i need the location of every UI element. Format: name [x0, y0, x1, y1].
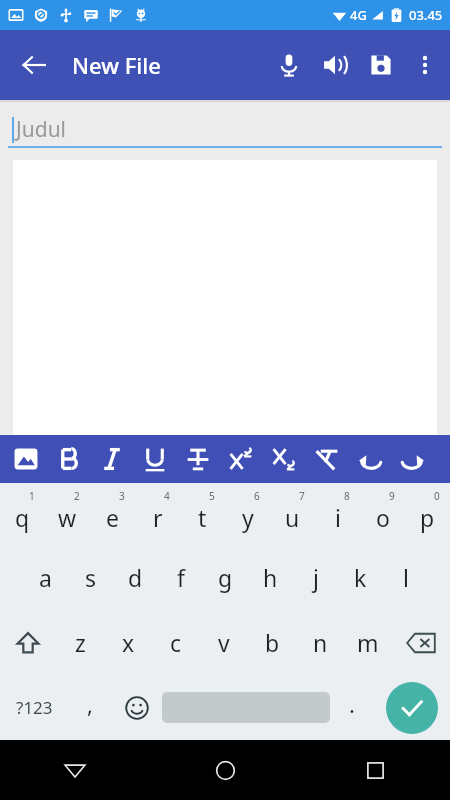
staticText: 2 [74, 489, 80, 503]
staticText: . [349, 689, 355, 719]
button[interactable]: l [383, 545, 428, 610]
staticText: 9 [389, 489, 395, 503]
button[interactable]: Bold [47, 435, 90, 483]
staticText: s [85, 562, 97, 593]
staticText: 0 [434, 489, 440, 503]
staticText: w [58, 502, 77, 533]
staticText: 4 [164, 489, 170, 503]
button[interactable]: Voice input [266, 42, 312, 88]
staticText: m [357, 627, 379, 658]
staticText: 1 [29, 489, 35, 503]
button[interactable]: Subscript [262, 435, 305, 483]
staticText: 3 [119, 489, 125, 503]
button[interactable]: v [200, 610, 248, 675]
button[interactable]: Recent apps [300, 740, 450, 800]
staticText: y [242, 502, 254, 533]
staticText: , [87, 689, 93, 719]
staticText: k [354, 562, 367, 593]
staticText: ?123 [16, 696, 53, 719]
staticText: u [285, 502, 300, 533]
button[interactable]: p [405, 483, 450, 545]
staticText: New File [72, 50, 161, 80]
staticText: 7 [299, 489, 305, 503]
button[interactable]: d [113, 545, 158, 610]
staticText: r [153, 502, 163, 533]
staticText: 4G [350, 6, 367, 24]
button[interactable]: t [180, 483, 225, 545]
staticText: i [335, 502, 341, 533]
button[interactable]: Italic [90, 435, 133, 483]
button[interactable]: . [330, 675, 374, 740]
button[interactable]: k [338, 545, 383, 610]
staticText: f [177, 562, 185, 593]
button[interactable]: Home [150, 740, 300, 800]
button[interactable]: f [158, 545, 203, 610]
staticText: o [376, 502, 390, 533]
button[interactable]: q [0, 483, 45, 545]
button[interactable]: Underline [133, 435, 176, 483]
button[interactable]: g [203, 545, 248, 610]
button[interactable]: Emoji [112, 675, 162, 740]
button[interactable]: Strikethrough [176, 435, 219, 483]
staticText: b [265, 627, 280, 658]
button[interactable]: Done [374, 675, 450, 740]
staticText: n [313, 627, 328, 658]
button[interactable]: Save [358, 42, 404, 88]
button[interactable]: i [315, 483, 360, 545]
button[interactable]: Superscript [219, 435, 262, 483]
button[interactable]: h [248, 545, 293, 610]
staticText: q [15, 502, 30, 533]
button[interactable]: m [344, 610, 392, 675]
button[interactable]: Insert image [4, 435, 47, 483]
staticText: 6 [254, 489, 260, 503]
button[interactable]: , [68, 675, 112, 740]
button[interactable]: j [293, 545, 338, 610]
button[interactable]: Back [10, 41, 58, 89]
button[interactable]: w [45, 483, 90, 545]
button[interactable]: e [90, 483, 135, 545]
button[interactable]: x [104, 610, 152, 675]
button[interactable]: ?123 [0, 675, 68, 740]
button[interactable]: More options [404, 44, 446, 86]
button[interactable]: r [135, 483, 180, 545]
button[interactable]: c [152, 610, 200, 675]
button[interactable]: a [22, 545, 68, 610]
staticText: h [263, 562, 278, 593]
staticText: 03.45 [409, 6, 443, 24]
staticText: d [128, 562, 143, 593]
button[interactable]: b [248, 610, 296, 675]
button[interactable]: z [56, 610, 104, 675]
staticText: j [313, 562, 319, 593]
staticText: e [106, 502, 119, 533]
button[interactable]: s [68, 545, 113, 610]
staticText: a [39, 562, 52, 593]
staticText: t [198, 502, 207, 533]
button[interactable]: Backspace [392, 610, 450, 675]
button[interactable]: o [360, 483, 405, 545]
button[interactable]: Redo [391, 435, 434, 483]
staticText: 8 [344, 489, 350, 503]
button[interactable]: y [225, 483, 270, 545]
button[interactable]: Shift [0, 610, 56, 675]
button[interactable]: Undo [348, 435, 391, 483]
staticText: x [122, 627, 135, 658]
staticText: l [403, 562, 409, 593]
staticText: c [170, 627, 182, 658]
staticText: z [75, 627, 86, 658]
button[interactable]: n [296, 610, 344, 675]
button[interactable]: u [270, 483, 315, 545]
staticText: p [420, 502, 435, 533]
button[interactable]: Judul [0, 110, 450, 148]
staticText: v [218, 627, 230, 658]
staticText: g [218, 562, 233, 593]
button[interactable]: Read aloud [312, 42, 358, 88]
button[interactable]: Back [0, 740, 150, 800]
button[interactable]: Clear formatting [305, 435, 348, 483]
staticText: Judul [16, 115, 67, 144]
staticText: 5 [209, 489, 215, 503]
